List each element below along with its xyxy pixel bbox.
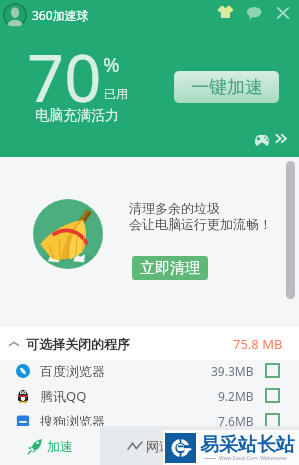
- button[interactable]: Close: [274, 4, 292, 22]
- staticText: 网速: [146, 438, 172, 454]
- staticText: 百度浏览器: [40, 363, 105, 379]
- button[interactable]: 加速: [0, 426, 100, 465]
- button[interactable]: 搜狗浏览器: [0, 408, 299, 433]
- button[interactable]: Account: [3, 3, 27, 27]
- button[interactable]: 网速: [100, 426, 299, 465]
- staticText: 会让电脑运行更加流畅！: [129, 216, 272, 232]
- button[interactable]: 一键加速: [174, 71, 279, 103]
- button[interactable]: Game mode: [254, 132, 270, 148]
- button[interactable]: 百度浏览器: [0, 358, 299, 383]
- staticText: 易采站长站: [200, 433, 295, 457]
- staticText: 搜狗浏览器: [40, 413, 105, 429]
- staticText: 电脑充满活力: [35, 107, 119, 125]
- staticText: 已用: [104, 86, 128, 101]
- staticText: 70: [27, 33, 102, 122]
- button[interactable]: Feedback: [245, 4, 263, 22]
- button[interactable]: 立即清理: [132, 256, 208, 280]
- staticText: 立即清理: [140, 259, 200, 278]
- staticText: Www.Easck.Com Webmaster: [219, 455, 288, 462]
- button[interactable]: Themes: [216, 2, 235, 21]
- staticText: 9.2MB: [218, 388, 254, 404]
- staticText: 可选择关闭的程序: [26, 336, 130, 352]
- staticText: 加速: [47, 438, 73, 454]
- staticText: 清理多余的垃圾: [129, 200, 220, 216]
- staticText: %: [103, 51, 120, 78]
- staticText: 腾讯QQ: [40, 387, 87, 405]
- staticText: 一键加速: [191, 76, 263, 99]
- staticText: 39.3MB: [211, 363, 254, 379]
- button[interactable]: Expand: [275, 132, 288, 145]
- staticText: 75.8 MB: [233, 335, 283, 353]
- staticText: 360加速球: [32, 7, 89, 23]
- staticText: 7.6MB: [218, 413, 254, 429]
- button[interactable]: 腾讯QQ: [0, 383, 299, 408]
- button[interactable]: 可选择关闭的程序: [8, 327, 283, 360]
